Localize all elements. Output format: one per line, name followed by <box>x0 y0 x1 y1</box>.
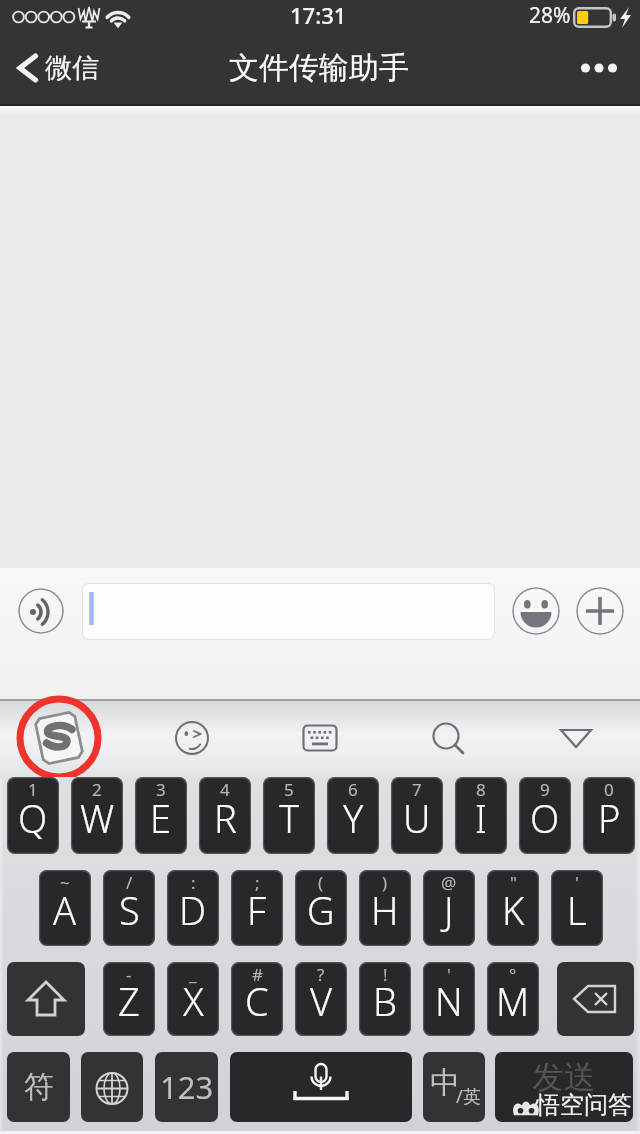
button[interactable]: Hide keyboard <box>512 699 640 777</box>
staticText: Q <box>18 792 48 844</box>
staticText: ) <box>382 871 388 894</box>
staticText: K <box>502 884 525 936</box>
button[interactable]: More <box>561 36 637 106</box>
staticText: 1 <box>28 778 38 801</box>
button[interactable]: # <box>231 962 283 1036</box>
staticText: 5 <box>284 778 294 801</box>
staticText: W <box>80 792 115 844</box>
button[interactable]: 发送 <box>495 1052 633 1122</box>
button[interactable]: - <box>103 962 155 1036</box>
button[interactable]: ° <box>487 962 539 1036</box>
button[interactable]: Search <box>384 699 512 777</box>
button[interactable]: Keyboard layout <box>256 699 384 777</box>
button[interactable]: ! <box>359 962 411 1036</box>
staticText: B <box>373 975 397 1027</box>
staticText: 符 <box>24 1068 54 1106</box>
button[interactable]: 中 <box>423 1052 485 1122</box>
button[interactable]: _ <box>167 962 219 1036</box>
button[interactable]: More functions <box>576 587 624 635</box>
staticText: 悟空问答 <box>536 1090 632 1120</box>
staticText: T <box>279 792 300 844</box>
staticText: ? <box>317 963 325 986</box>
button[interactable]: Voice message <box>18 588 64 634</box>
button[interactable] <box>82 583 495 640</box>
staticText: 28% <box>529 1 571 30</box>
button[interactable]: 0 <box>583 777 635 854</box>
button[interactable]: Backspace <box>557 962 634 1036</box>
staticText: 9 <box>540 778 550 801</box>
staticText: ; <box>255 871 260 894</box>
staticText: J <box>444 884 454 936</box>
button[interactable]: Shift <box>7 962 85 1036</box>
staticText: ! <box>383 963 388 986</box>
staticText: F <box>247 884 267 936</box>
staticText: _ <box>189 963 197 986</box>
staticText: ( <box>318 871 324 894</box>
button[interactable]: Sogou keyboard <box>0 699 123 777</box>
button[interactable]: @ <box>423 870 475 946</box>
staticText: : <box>191 871 196 894</box>
staticText: 3 <box>156 778 166 801</box>
button[interactable]: Emoticons <box>128 699 256 777</box>
staticText: 123 <box>160 1066 214 1108</box>
staticText: ° <box>509 963 517 986</box>
staticText: 0 <box>604 778 614 801</box>
button[interactable]: Emoji <box>512 587 560 635</box>
staticText: 17:31 <box>290 0 347 30</box>
staticText: " <box>510 871 517 894</box>
staticText: 发送 <box>532 1057 596 1097</box>
staticText: U <box>403 792 431 844</box>
staticText: X <box>183 975 204 1027</box>
staticText: H <box>371 884 399 936</box>
staticText: ~ <box>60 871 70 894</box>
staticText: ' <box>575 871 579 894</box>
button[interactable]: 5 <box>263 777 315 854</box>
staticText: I <box>475 792 487 844</box>
staticText: 中 <box>430 1064 460 1102</box>
staticText: /英 <box>456 1084 481 1109</box>
button[interactable]: ? <box>295 962 347 1036</box>
staticText: 4 <box>220 778 230 801</box>
staticText: N <box>435 975 463 1027</box>
staticText: 7 <box>412 778 422 801</box>
staticText: Z <box>118 975 140 1027</box>
staticText: @ <box>441 871 457 894</box>
button[interactable]: 6 <box>327 777 379 854</box>
button[interactable]: 123 <box>155 1052 218 1122</box>
button[interactable]: ; <box>231 870 283 946</box>
button[interactable]: 3 <box>135 777 187 854</box>
staticText: # <box>252 963 263 986</box>
staticText: 文件传输助手 <box>229 49 409 87</box>
staticText: 8 <box>476 778 486 801</box>
button[interactable]: 符 <box>7 1052 70 1122</box>
button[interactable]: Switch language <box>81 1052 143 1122</box>
button[interactable]: / <box>103 870 155 946</box>
staticText: 6 <box>348 778 358 801</box>
button[interactable]: 2 <box>71 777 123 854</box>
button[interactable]: 7 <box>391 777 443 854</box>
staticText: M <box>496 975 530 1027</box>
staticText: D <box>179 884 207 936</box>
button[interactable]: " <box>487 870 539 946</box>
staticText: E <box>150 792 172 844</box>
button[interactable]: Voice input <box>230 1052 412 1122</box>
staticText: O <box>530 792 560 844</box>
button[interactable]: 4 <box>199 777 251 854</box>
staticText: C <box>245 975 269 1027</box>
button[interactable]: ' <box>423 962 475 1036</box>
staticText: G <box>307 884 335 936</box>
staticText: S <box>119 884 140 936</box>
button[interactable]: 9 <box>519 777 571 854</box>
button[interactable]: 微信 <box>0 36 113 106</box>
button[interactable]: ~ <box>39 870 91 946</box>
button[interactable]: 8 <box>455 777 507 854</box>
button[interactable]: ( <box>295 870 347 946</box>
button[interactable]: ) <box>359 870 411 946</box>
button[interactable]: 1 <box>7 777 59 854</box>
staticText: / <box>126 871 133 894</box>
button[interactable]: ' <box>551 870 603 946</box>
staticText: Y <box>343 792 364 844</box>
staticText: - <box>126 963 132 986</box>
button[interactable]: : <box>167 870 219 946</box>
staticText: A <box>53 884 77 936</box>
